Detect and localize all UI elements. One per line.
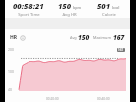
button[interactable]: 150 bbox=[50, 1, 89, 18]
staticText: 150 bbox=[58, 1, 72, 11]
staticText: kcal bbox=[112, 5, 120, 10]
staticText: 501 bbox=[97, 1, 111, 11]
staticText: 200 bbox=[8, 47, 14, 52]
staticText: Avg bbox=[70, 35, 77, 40]
staticText: 100 bbox=[8, 69, 14, 74]
staticText: 167 bbox=[113, 33, 125, 42]
staticText: HR bbox=[10, 34, 18, 41]
staticText: Calorie bbox=[102, 12, 116, 18]
staticText: 167 bbox=[118, 48, 124, 52]
staticText: Maximum bbox=[93, 35, 112, 40]
staticText: bpm bbox=[73, 5, 82, 10]
staticText: 00:40:00 bbox=[97, 97, 110, 101]
staticText: 40 bbox=[8, 87, 12, 92]
staticText: Sport Time bbox=[18, 12, 40, 18]
button[interactable]: 00:58:21 bbox=[5, 0, 130, 18]
staticText: Avg HR bbox=[62, 12, 77, 18]
button[interactable]: 00:58:21 bbox=[7, 1, 50, 18]
staticText: 150 bbox=[78, 33, 90, 42]
staticText: 00:20:00 bbox=[46, 97, 59, 101]
button[interactable]: 501 bbox=[89, 1, 128, 18]
staticText: 00:58:21 bbox=[13, 1, 44, 11]
button[interactable]: Heart rate info bbox=[20, 35, 26, 41]
button[interactable]: HR bbox=[5, 29, 130, 102]
